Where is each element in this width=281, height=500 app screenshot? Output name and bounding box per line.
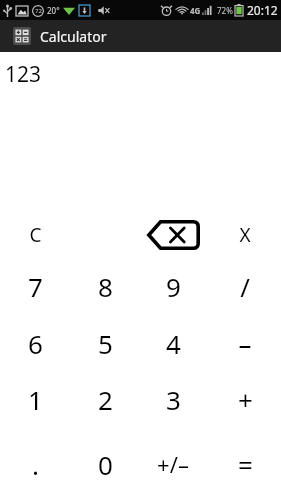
button[interactable]: Backspace xyxy=(139,209,207,261)
staticText: 9 xyxy=(166,269,181,304)
staticText: 4G xyxy=(190,5,201,16)
staticText: 20° xyxy=(47,5,60,16)
staticText: X xyxy=(239,222,251,248)
staticText: + xyxy=(238,382,253,417)
staticText: C xyxy=(29,222,42,248)
button[interactable]: 9 xyxy=(139,260,207,312)
staticText: 0 xyxy=(98,447,113,482)
staticText: 3 xyxy=(166,382,181,417)
staticText: 20:12 xyxy=(247,2,278,18)
staticText: 72 xyxy=(35,7,42,15)
staticText: 5 xyxy=(98,326,113,361)
button[interactable]: +/– xyxy=(139,438,207,490)
button[interactable]: 7 xyxy=(1,260,69,312)
staticText: = xyxy=(238,447,253,482)
staticText: 72% xyxy=(217,5,233,16)
staticText: 4 xyxy=(166,326,181,361)
button[interactable]: 2 xyxy=(71,373,139,425)
button[interactable]: X xyxy=(211,209,279,261)
button[interactable]: 3 xyxy=(139,373,207,425)
button[interactable]: – xyxy=(211,317,279,369)
staticText: 1 xyxy=(28,382,43,417)
staticText: 8 xyxy=(98,269,113,304)
button[interactable]: / xyxy=(211,260,279,312)
button[interactable]: 5 xyxy=(71,317,139,369)
button[interactable]: C xyxy=(1,209,69,261)
button[interactable]: . xyxy=(1,438,69,490)
button[interactable]: 1 xyxy=(1,373,69,425)
staticText: 123 xyxy=(5,60,42,89)
staticText: / xyxy=(240,269,250,304)
button[interactable]: 8 xyxy=(71,260,139,312)
staticText: 2 xyxy=(98,382,113,417)
button[interactable]: + xyxy=(211,373,279,425)
staticText: – xyxy=(238,326,252,361)
staticText: . xyxy=(32,447,39,482)
staticText: 6 xyxy=(28,326,43,361)
staticText: +/– xyxy=(157,449,189,479)
button[interactable]: 4 xyxy=(139,317,207,369)
button[interactable]: = xyxy=(211,438,279,490)
staticText: 7 xyxy=(28,269,43,304)
button[interactable]: 0 xyxy=(71,438,139,490)
staticText: Calculator xyxy=(40,27,107,46)
button[interactable]: 6 xyxy=(1,317,69,369)
